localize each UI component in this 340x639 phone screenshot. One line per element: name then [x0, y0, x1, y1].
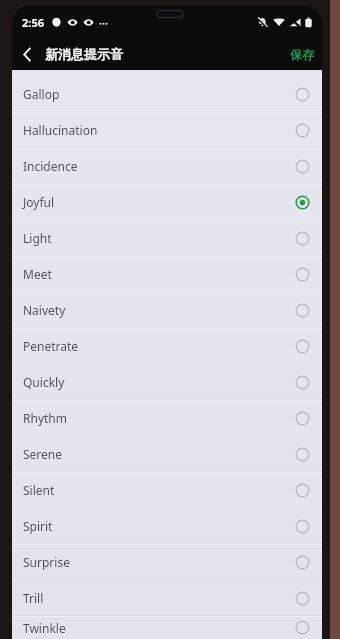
staticText: Surprise: [23, 554, 295, 570]
staticText: Gallop: [23, 86, 295, 102]
staticText: Serene: [23, 446, 295, 462]
staticText: 新消息提示音: [45, 46, 123, 62]
staticText: Incidence: [23, 158, 295, 174]
button[interactable]: Spirit: [12, 508, 322, 544]
button[interactable]: Serene: [12, 436, 322, 472]
staticText: Joyful: [23, 194, 295, 210]
staticText: Penetrate: [23, 338, 295, 354]
button[interactable]: Hallucination: [12, 112, 322, 148]
button[interactable]: Gallop: [12, 76, 322, 112]
button[interactable]: Surprise: [12, 544, 322, 580]
button[interactable]: 保存: [282, 41, 322, 68]
staticText: Spirit: [23, 518, 295, 534]
button[interactable]: Incidence: [12, 148, 322, 184]
staticText: Hallucination: [23, 122, 295, 138]
staticText: Light: [23, 230, 295, 246]
staticText: Silent: [23, 482, 295, 498]
staticText: Quickly: [23, 374, 295, 390]
staticText: Rhythm: [23, 410, 295, 426]
staticText: Twinkle: [23, 620, 295, 636]
button[interactable]: Silent: [12, 472, 322, 508]
button[interactable]: Quickly: [12, 364, 322, 400]
button[interactable]: Light: [12, 220, 322, 256]
button[interactable]: Naivety: [12, 292, 322, 328]
staticText: 保存: [290, 47, 314, 62]
button[interactable]: Trill: [12, 580, 322, 616]
staticText: Naivety: [23, 302, 295, 318]
staticText: 2:56: [22, 15, 44, 30]
button[interactable]: Joyful: [12, 184, 322, 220]
staticText: Trill: [23, 590, 295, 606]
button[interactable]: Back: [12, 38, 42, 70]
staticText: Meet: [23, 266, 295, 282]
button[interactable]: Twinkle: [12, 616, 322, 639]
button[interactable]: Penetrate: [12, 328, 322, 364]
button[interactable]: Meet: [12, 256, 322, 292]
button[interactable]: Rhythm: [12, 400, 322, 436]
